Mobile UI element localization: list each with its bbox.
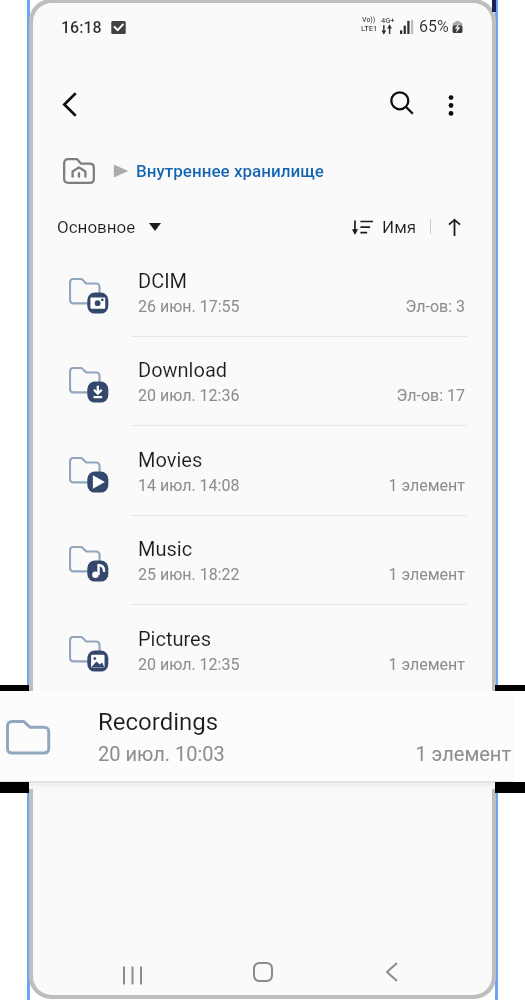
staticText: Эл-ов: 17 [263,386,465,405]
staticText: 65% [419,17,449,36]
staticText: 1 элемент [263,476,465,495]
staticText: Основное [57,217,136,237]
button[interactable]: Pictures [34,605,491,695]
button[interactable]: Download [34,336,491,426]
button[interactable]: Recordings [34,694,491,784]
button[interactable]: Search [378,79,426,127]
staticText: Download [138,358,228,381]
staticText: Music [138,537,193,560]
staticText: DCIM [138,269,188,292]
staticText: 20 июл. 10:03 [138,744,240,763]
staticText: 26 июн. 17:55 [138,297,240,316]
button[interactable]: DCIM [34,247,491,337]
button[interactable]: Home [235,944,291,999]
button[interactable]: Основное [51,209,167,245]
button[interactable]: Back [46,80,94,128]
staticText: 16:18 [61,18,102,37]
staticText: Внутреннее хранилище [136,161,324,181]
button[interactable]: Recordings [0,691,514,781]
button[interactable]: Music [34,515,491,605]
button[interactable]: Movies [34,426,491,516]
staticText: 4G+ [381,16,395,25]
button[interactable]: Внутреннее хранилище [136,153,324,189]
button[interactable]: Sort ascending [438,209,470,245]
button[interactable]: Internal storage root [58,153,100,189]
staticText: Vo)) [362,16,376,24]
staticText: 1 элемент [263,744,465,763]
button[interactable]: Имя [346,209,423,245]
staticText: 1 элемент [263,565,465,584]
button[interactable]: Back [364,944,420,999]
staticText: 20 июл. 12:35 [138,655,240,674]
staticText: Recordings [98,708,219,736]
staticText: Movies [138,448,203,471]
staticText: 1 элемент [263,655,465,674]
staticText: Имя [382,217,417,237]
button[interactable]: More options [427,81,475,129]
staticText: 20 июл. 12:36 [138,386,240,405]
staticText: 25 июн. 18:22 [138,565,240,584]
staticText: Pictures [138,627,212,650]
staticText: 14 июл. 14:08 [138,476,240,495]
staticText: 1 элемент [300,742,511,765]
staticText: 20 июл. 10:03 [98,742,225,765]
button[interactable]: Recent apps [104,947,160,999]
staticText: Recordings [138,716,239,739]
staticText: Эл-ов: 3 [263,297,465,316]
staticText: LTE1 [361,24,378,33]
